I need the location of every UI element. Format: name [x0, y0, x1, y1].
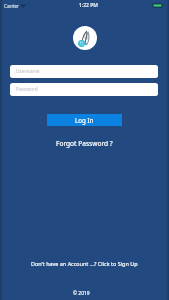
staticText: Log In	[75, 116, 94, 124]
button[interactable]: Don't have an Account ...? Click to Sign…	[27, 258, 142, 269]
staticText: © 2019	[73, 290, 90, 297]
button[interactable]: Forgot Password ?	[52, 137, 117, 150]
staticText: Forgot Password ?	[56, 139, 113, 148]
staticText: Password	[16, 86, 38, 93]
button[interactable]: Log In	[47, 114, 122, 126]
staticText: Carrier	[4, 3, 19, 9]
staticText: Don't have an Account ...? Click to Sign…	[31, 260, 138, 267]
staticText: 1:22 PM	[79, 2, 98, 9]
staticText: Username	[16, 68, 40, 75]
button[interactable]: Password	[10, 83, 158, 96]
button[interactable]: Username	[10, 65, 158, 78]
